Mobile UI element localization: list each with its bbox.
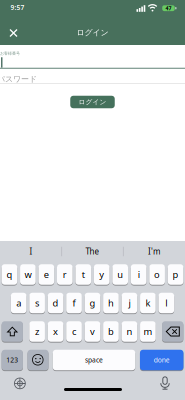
button[interactable]: q — [2, 264, 17, 285]
staticText: j — [128, 297, 130, 309]
staticText: r — [63, 268, 67, 281]
staticText: g — [89, 297, 95, 309]
staticText: i — [138, 268, 140, 281]
button[interactable]: i — [131, 264, 146, 285]
button[interactable]: b — [103, 321, 119, 342]
staticText: d — [53, 297, 59, 309]
staticText: 47 — [165, 5, 171, 12]
button[interactable]: u — [112, 264, 128, 285]
button[interactable]: 123 — [2, 350, 23, 370]
button[interactable]: l — [158, 293, 174, 313]
button[interactable]: h — [103, 293, 119, 313]
button[interactable]: I'm — [125, 243, 183, 260]
staticText: a — [16, 297, 21, 309]
staticText: お客様番号 — [0, 51, 20, 56]
staticText: ログイン — [76, 28, 108, 37]
staticText: u — [117, 268, 123, 281]
staticText: I — [29, 246, 32, 257]
staticText: 9:57 — [10, 3, 24, 12]
button[interactable]: z — [29, 321, 45, 342]
staticText: 123 — [6, 356, 18, 364]
staticText: I'm — [148, 246, 160, 257]
button[interactable]: The — [63, 243, 121, 260]
staticText: space — [85, 356, 103, 364]
staticText: ログイン — [78, 98, 106, 106]
button[interactable]: g — [85, 293, 100, 313]
staticText: done — [154, 356, 170, 364]
button[interactable]: e — [38, 264, 54, 285]
button[interactable]: space — [53, 350, 135, 370]
staticText: f — [72, 297, 75, 309]
button[interactable]: x — [48, 321, 63, 342]
button[interactable]: t — [75, 264, 91, 285]
staticText: k — [145, 297, 150, 309]
button[interactable]: Next keyboard — [14, 377, 26, 389]
button[interactable]: v — [85, 321, 100, 342]
staticText: b — [108, 325, 114, 338]
button[interactable]: Shift — [2, 321, 23, 342]
staticText: w — [24, 268, 31, 281]
staticText: y — [99, 268, 104, 281]
staticText: t — [82, 268, 85, 281]
button[interactable]: y — [94, 264, 110, 285]
button[interactable]: Emoji — [28, 350, 48, 370]
button[interactable]: o — [149, 264, 165, 285]
button[interactable]: a — [11, 293, 26, 313]
staticText: p — [173, 268, 179, 281]
staticText: The — [85, 246, 99, 257]
staticText: h — [108, 297, 114, 309]
button[interactable]: Close — [9, 28, 18, 37]
button[interactable]: ログイン — [70, 96, 115, 108]
button[interactable]: I — [2, 243, 60, 260]
staticText: v — [90, 325, 95, 338]
button[interactable]: w — [20, 264, 36, 285]
button[interactable]: n — [122, 321, 137, 342]
button[interactable]: f — [66, 293, 82, 313]
staticText: x — [53, 325, 58, 338]
staticText: o — [154, 268, 160, 281]
staticText: n — [126, 325, 132, 338]
button[interactable]: c — [66, 321, 82, 342]
staticText: l — [165, 297, 167, 309]
button[interactable]: Delete — [162, 321, 183, 342]
staticText: c — [72, 325, 76, 338]
staticText: z — [35, 325, 39, 338]
button[interactable]: r — [57, 264, 73, 285]
staticText: e — [44, 268, 49, 281]
button[interactable]: Dictation — [158, 376, 171, 390]
staticText: q — [6, 268, 12, 281]
button[interactable]: done — [140, 350, 183, 370]
button[interactable]: d — [48, 293, 63, 313]
button[interactable]: k — [140, 293, 156, 313]
staticText: パスワード — [0, 74, 37, 84]
staticText: s — [35, 297, 39, 309]
button[interactable]: s — [29, 293, 45, 313]
button[interactable]: j — [122, 293, 137, 313]
button[interactable]: p — [168, 264, 183, 285]
staticText: m — [143, 325, 152, 338]
button[interactable]: m — [140, 321, 156, 342]
